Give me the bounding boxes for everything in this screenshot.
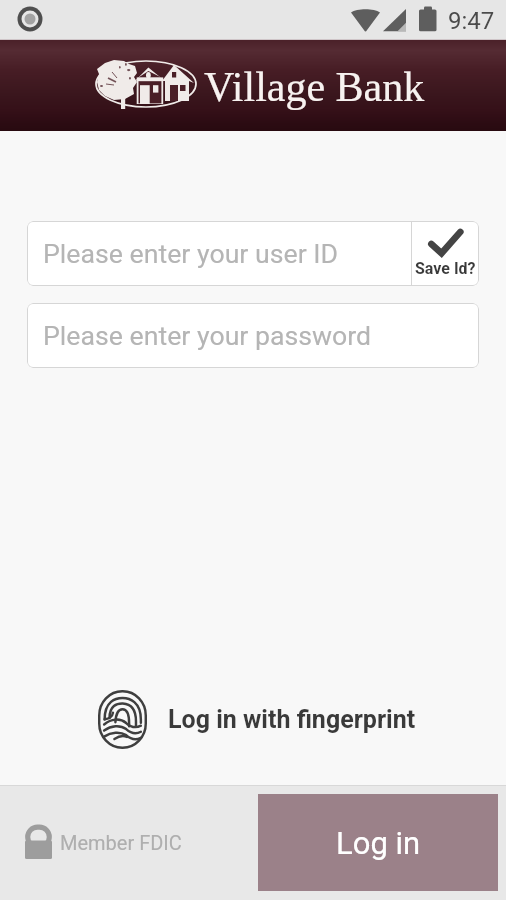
staticText: Log in (336, 825, 421, 861)
button[interactable]: Save Id (412, 221, 479, 286)
staticText: Save Id? (415, 259, 476, 278)
staticText: Please enter your password (43, 320, 372, 351)
button[interactable]: Please enter your user ID (27, 221, 479, 286)
button[interactable]: Log in (258, 794, 498, 891)
staticText: 9:47 (448, 7, 495, 35)
staticText: Village Bank (204, 64, 425, 111)
button[interactable]: Member FDIC (25, 824, 182, 859)
button[interactable]: Please enter your password (27, 303, 479, 368)
staticText: Log in with fingerprint (168, 705, 416, 734)
button[interactable]: Log in with fingerprint (98, 690, 416, 749)
staticText: Member FDIC (60, 831, 182, 854)
staticText: Please enter your user ID (43, 238, 411, 269)
